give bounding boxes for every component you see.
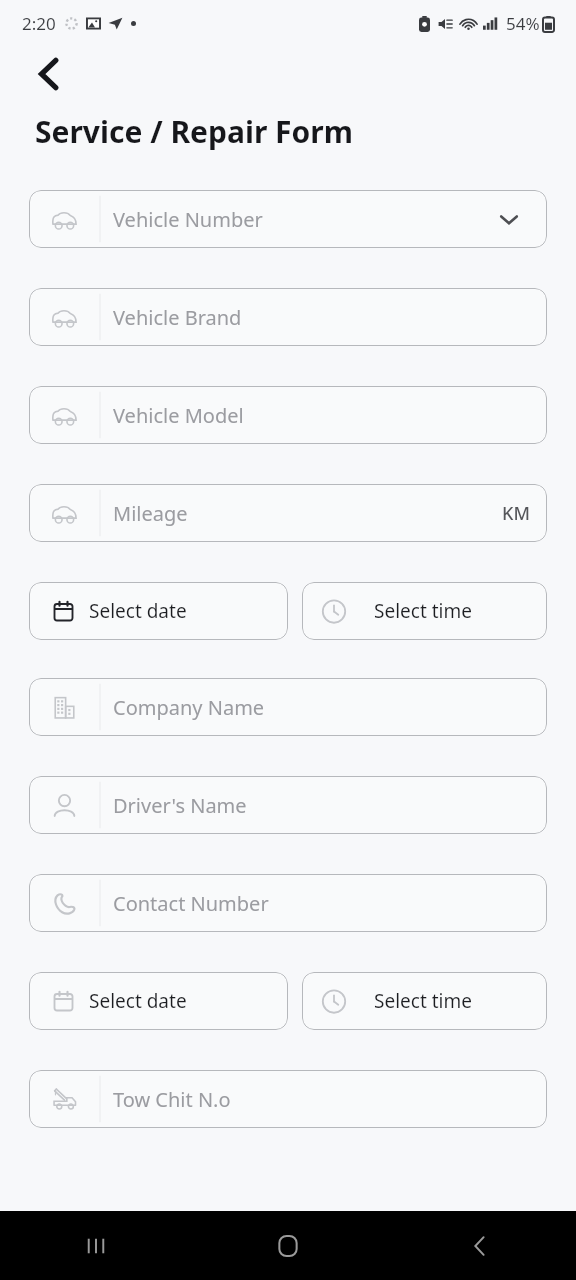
staticText: Tow Chit N.o — [113, 1086, 231, 1113]
button[interactable]: Select time — [302, 582, 547, 640]
staticText: Vehicle Model — [113, 402, 244, 429]
button[interactable]: Driver's Name — [29, 776, 547, 834]
staticText: 2:20 — [22, 12, 56, 35]
staticText: Company Name — [113, 694, 265, 721]
button[interactable]: Back — [384, 1211, 576, 1280]
staticText: Service / Repair Form — [35, 111, 353, 152]
staticText: Vehicle Number — [113, 206, 263, 233]
button[interactable]: Select date — [29, 972, 288, 1030]
staticText: Select time — [374, 598, 472, 624]
staticText: Contact Number — [113, 890, 269, 917]
button[interactable]: Select date — [29, 582, 288, 640]
staticText: Vehicle Brand — [113, 304, 242, 331]
button[interactable]: Mileage — [29, 484, 547, 542]
button[interactable]: Recent apps — [0, 1211, 192, 1280]
button[interactable]: Vehicle Model — [29, 386, 547, 444]
button[interactable]: Vehicle Brand — [29, 288, 547, 346]
button[interactable]: Contact Number — [29, 874, 547, 932]
button[interactable]: Vehicle Number — [29, 190, 547, 248]
button[interactable]: Home — [192, 1211, 384, 1280]
button[interactable]: Company Name — [29, 678, 547, 736]
staticText: Driver's Name — [113, 792, 247, 819]
staticText: Select date — [89, 988, 187, 1014]
staticText: Select time — [374, 988, 472, 1014]
button[interactable]: Tow Chit N.o — [29, 1070, 547, 1128]
staticText: Select date — [89, 598, 187, 624]
button[interactable]: Back — [26, 51, 72, 97]
button[interactable]: Select time — [302, 972, 547, 1030]
staticText: KM — [502, 501, 530, 526]
staticText: 54% — [506, 12, 540, 35]
staticText: Mileage — [113, 500, 188, 527]
